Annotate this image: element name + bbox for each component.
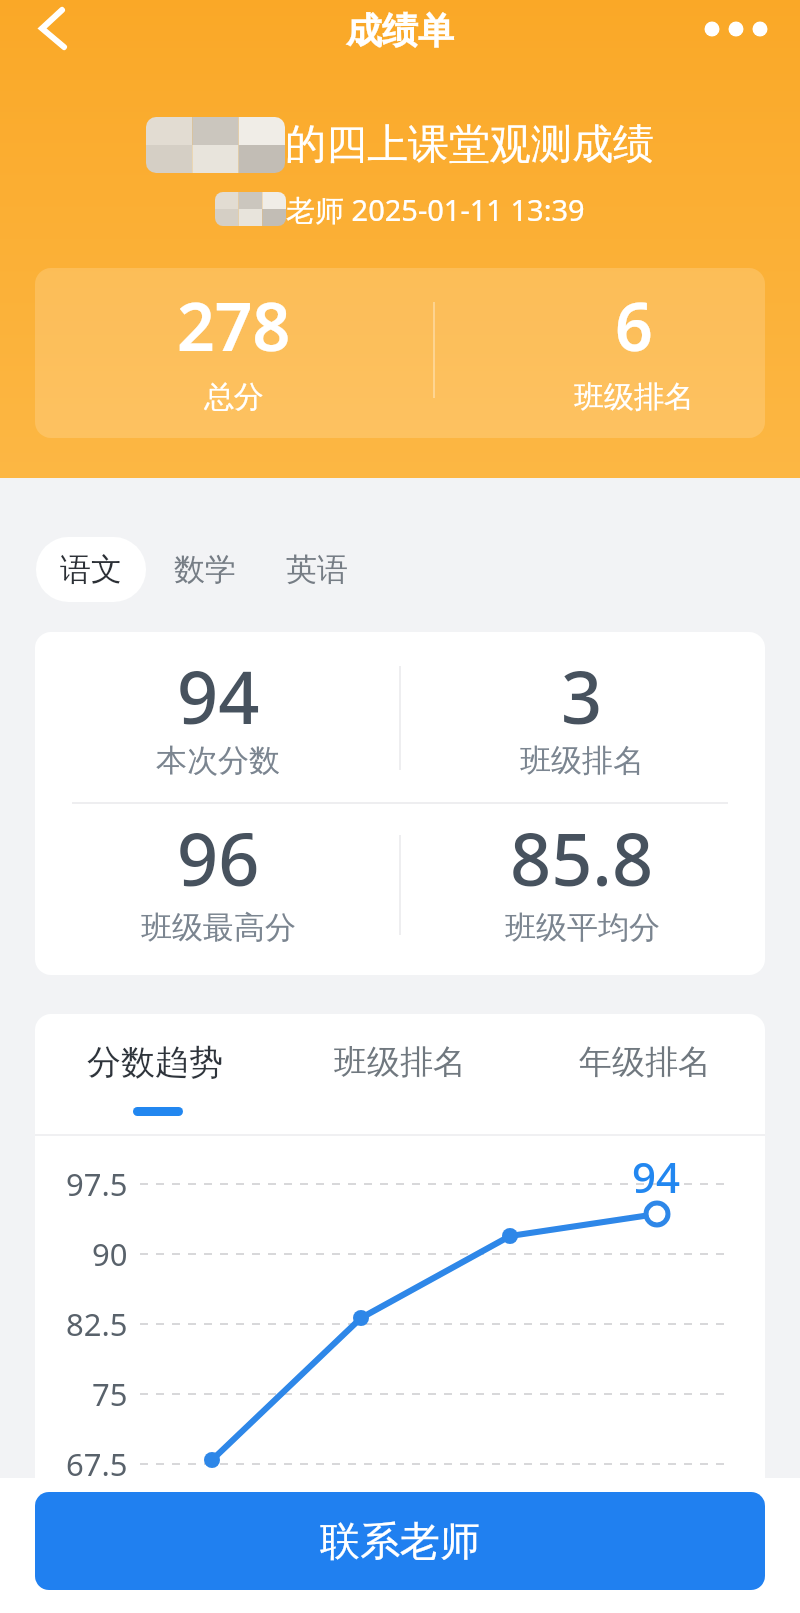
staticText: 语文: [60, 550, 122, 589]
staticText: 96: [177, 809, 260, 889]
staticText: 的四上课堂观测成绩: [285, 119, 654, 171]
staticText: 75: [92, 1373, 128, 1415]
staticText: 90: [92, 1233, 128, 1275]
staticText: 本次分数: [156, 741, 280, 780]
staticText: 班级排名: [574, 378, 694, 416]
staticText: 班级排名: [334, 1041, 466, 1083]
staticText: 班级最高分: [141, 908, 296, 947]
button[interactable]: 语文: [36, 537, 146, 602]
staticText: 278: [177, 280, 291, 360]
staticText: 94: [177, 647, 260, 727]
staticText: 94: [632, 1148, 681, 1205]
staticText: 英语: [286, 550, 348, 589]
staticText: 85.8: [510, 809, 654, 889]
button[interactable]: 班级排名: [290, 1022, 510, 1102]
staticText: 82.5: [66, 1303, 128, 1345]
button[interactable]: 年级排名: [535, 1022, 755, 1102]
button[interactable]: 英语: [257, 537, 377, 602]
button[interactable]: 分数趋势: [45, 1022, 265, 1102]
staticText: 6: [615, 280, 653, 360]
button[interactable]: 联系老师: [35, 1492, 765, 1590]
staticText: 年级排名: [579, 1041, 711, 1083]
staticText: 97.5: [66, 1163, 128, 1205]
staticText: 联系老师: [320, 1516, 480, 1566]
button[interactable]: [695, 8, 775, 52]
staticText: 3: [561, 647, 603, 727]
staticText: 成绩单: [346, 8, 454, 53]
staticText: 老师 2025-01-11 13:39: [286, 190, 585, 228]
staticText: 数学: [174, 550, 236, 589]
button[interactable]: [22, 2, 84, 58]
staticText: 分数趋势: [87, 1041, 223, 1084]
staticText: 67.5: [66, 1443, 128, 1485]
staticText: 班级排名: [520, 741, 644, 780]
staticText: 总分: [204, 378, 264, 416]
button[interactable]: 数学: [145, 537, 265, 602]
staticText: 班级平均分: [505, 908, 660, 947]
